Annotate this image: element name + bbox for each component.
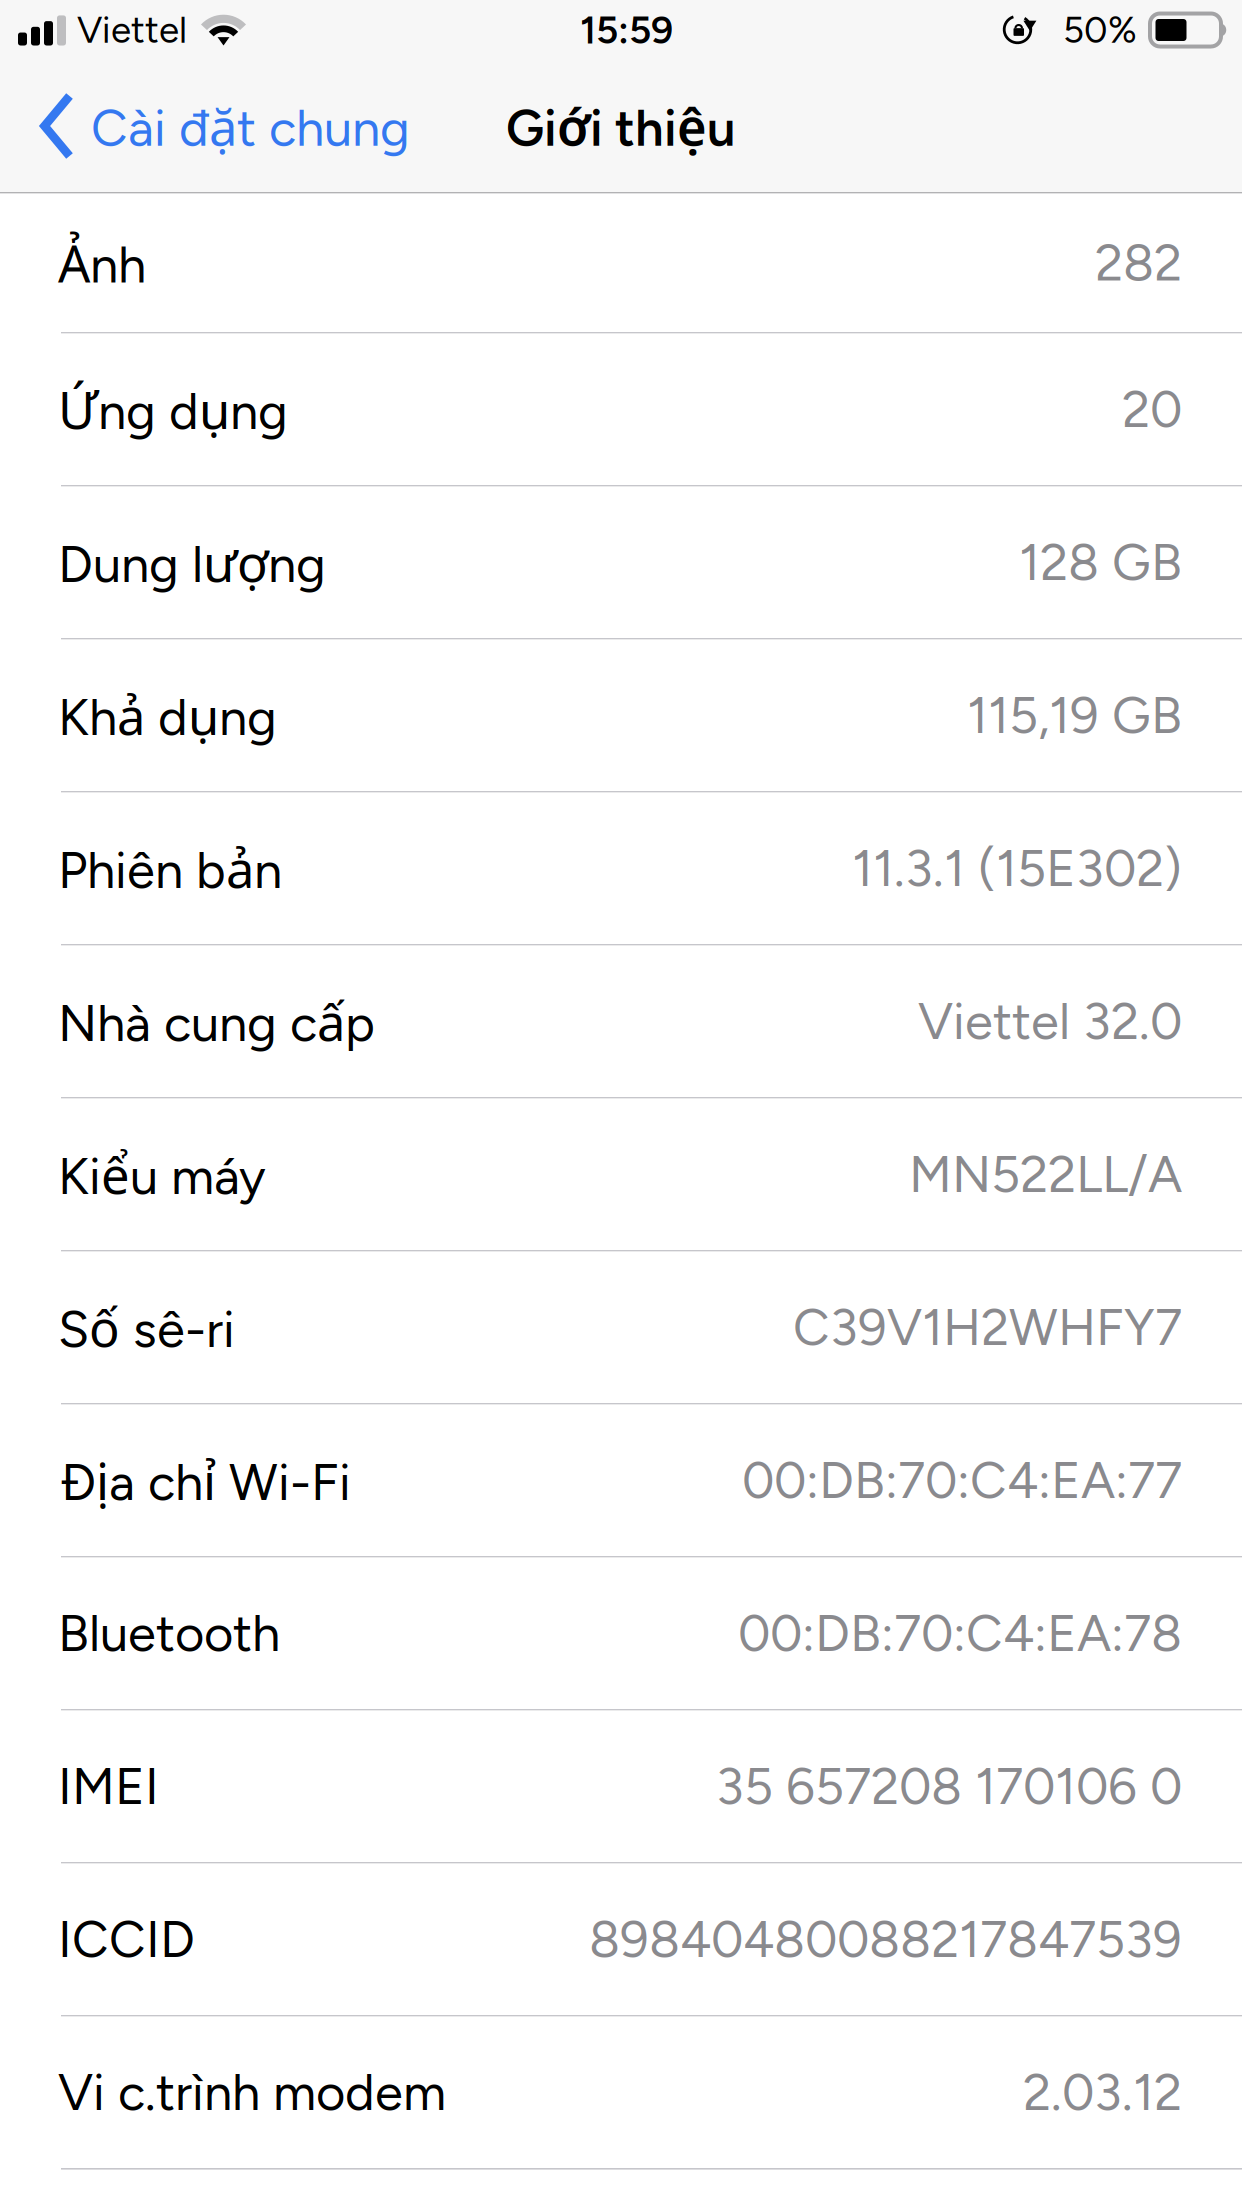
button[interactable]: IMEI	[0, 1711, 1242, 1864]
staticText: Nhà cung cấp	[58, 987, 375, 1056]
staticText: 35 657208 170106 0	[716, 1756, 1182, 1817]
staticText: Ảnh	[58, 228, 146, 297]
staticText: 15:59	[580, 7, 673, 53]
button[interactable]: Ứng dụng	[0, 334, 1242, 487]
staticText: C39V1H2WHFY7	[793, 1297, 1182, 1358]
staticText: Vi c.trình modem	[58, 2062, 446, 2123]
staticText: 128 GB	[1019, 532, 1182, 593]
staticText: 2.03.12	[1023, 2062, 1182, 2123]
staticText: Số sê-ri	[58, 1293, 235, 1362]
staticText: Cài đặt chung	[91, 91, 410, 160]
button[interactable]: Nhà cung cấp	[0, 946, 1242, 1099]
button[interactable]: Địa chỉ Wi-Fi	[0, 1405, 1242, 1558]
staticText: 11.3.1 (15E302)	[852, 838, 1182, 899]
staticText: Bluetooth	[58, 1603, 280, 1664]
staticText: Địa chỉ Wi-Fi	[58, 1446, 351, 1515]
button[interactable]: Khả dụng	[0, 640, 1242, 793]
button[interactable]: Số sê-ri	[0, 1252, 1242, 1405]
button[interactable]: Vi c.trình modem	[0, 2017, 1242, 2170]
staticText: 20	[1122, 379, 1182, 440]
staticText: ICCID	[58, 1909, 195, 1970]
staticText: 89840480088217847539	[589, 1909, 1182, 1970]
staticText: 282	[1095, 232, 1182, 293]
staticText: Khả dụng	[58, 681, 277, 750]
button[interactable]: Phiên bản	[0, 793, 1242, 946]
staticText: Viettel	[77, 8, 187, 52]
button[interactable]: Bluetooth	[0, 1558, 1242, 1711]
staticText: Kiểu máy	[58, 1140, 266, 1209]
button[interactable]: Cài đặt chung	[23, 60, 430, 192]
staticText: 00:DB:70:C4:EA:77	[742, 1450, 1182, 1511]
staticText: Phiên bản	[58, 834, 282, 903]
staticText: IMEI	[58, 1756, 159, 1817]
staticText: 115,19 GB	[967, 685, 1182, 746]
staticText: Giới thiệu	[506, 91, 736, 160]
staticText: MN522LL/A	[909, 1144, 1182, 1205]
staticText: 00:DB:70:C4:EA:78	[738, 1603, 1182, 1664]
staticText: Ứng dụng	[58, 375, 288, 444]
button[interactable]: Ảnh	[0, 194, 1242, 334]
staticText: 50%	[1063, 8, 1137, 52]
button[interactable]: Dung lượng	[0, 487, 1242, 640]
button[interactable]: ICCID	[0, 1864, 1242, 2017]
staticText: Dung lượng	[58, 528, 326, 597]
button[interactable]: Kiểu máy	[0, 1099, 1242, 1252]
staticText: Viettel 32.0	[918, 991, 1182, 1052]
